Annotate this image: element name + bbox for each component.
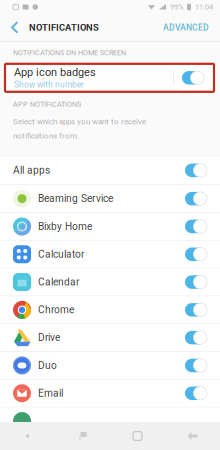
- staticText: notifications from.: [13, 131, 79, 141]
- staticText: APP NOTIFICATIONS: [13, 100, 81, 108]
- staticText: App icon badges: [14, 66, 96, 79]
- staticText: 11:04: [195, 3, 213, 11]
- button[interactable]: Duo: [0, 352, 220, 379]
- staticText: Select which apps you want to receive: [13, 117, 146, 126]
- staticText: All apps: [13, 164, 50, 176]
- button[interactable]: Back: [0, 14, 29, 41]
- button[interactable]: Bixby Home: [0, 213, 220, 240]
- button[interactable]: Beaming Service: [0, 185, 220, 212]
- staticText: 99%: [170, 3, 183, 11]
- staticText: Calculator: [38, 248, 84, 260]
- button[interactable]: ADVANCED: [163, 14, 220, 41]
- button[interactable]: Home: [110, 422, 165, 450]
- staticText: Calendar: [38, 276, 79, 288]
- staticText: Chrome: [38, 304, 74, 316]
- button[interactable]: Recent apps: [55, 422, 110, 450]
- button[interactable]: All apps: [0, 156, 220, 184]
- staticText: Duo: [38, 359, 57, 371]
- staticText: NOTIFICATIONS ON HOME SCREEN: [13, 49, 126, 57]
- staticText: NOTIFICATIONS: [29, 22, 99, 33]
- button[interactable]: Email: [0, 380, 220, 407]
- staticText: Show with number: [14, 80, 84, 90]
- button[interactable]: Back: [165, 422, 220, 450]
- staticText: Bixby Home: [38, 220, 92, 232]
- staticText: Drive: [38, 332, 60, 344]
- staticText: Beaming Service: [38, 193, 113, 205]
- button[interactable]: Calendar: [0, 269, 220, 296]
- button[interactable]: Drive: [0, 324, 220, 351]
- staticText: Email: [38, 387, 63, 399]
- button[interactable]: App icon badges: [0, 64, 220, 92]
- button[interactable]: Calculator: [0, 241, 220, 268]
- button[interactable]: Chrome: [0, 296, 220, 323]
- staticText: ADVANCED: [163, 22, 209, 33]
